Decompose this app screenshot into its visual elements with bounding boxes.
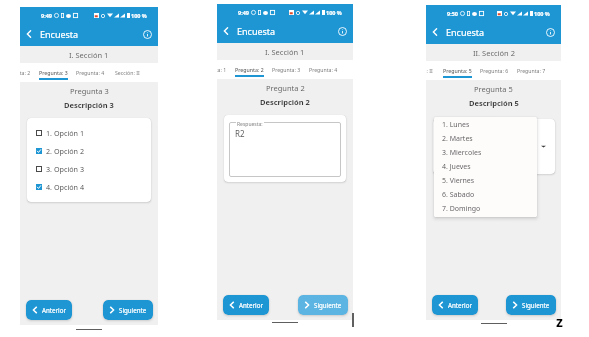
button[interactable]: Siguiente [298,295,348,315]
staticText: Pregunta: 3 [39,69,68,76]
staticText: Anterior [42,306,66,314]
button[interactable]: Pregunta: 2 [20,63,35,82]
button[interactable]: Back [217,22,235,40]
staticText: Pregunta: 2 [235,66,264,73]
button[interactable]: 3. Miercoles [434,146,537,160]
button[interactable]: Pregunta: 3 [268,60,305,79]
button[interactable]: Pregunta: 1 [217,60,231,79]
button[interactable]: Pregunta: 4 [72,63,109,82]
button[interactable]: 6. Sabado [434,188,537,202]
staticText: Sección: II [115,69,140,76]
staticText: 100 % [131,12,147,19]
staticText: 2. Martes [442,134,473,144]
staticText: Pregunta: 4 [309,66,338,73]
staticText: Anterior [239,301,263,309]
staticText: Siguiente [522,301,550,309]
staticText: Pregunta: 5 [443,67,472,74]
staticText: 2. Opción 2 [46,146,85,156]
staticText: Respuesta: [237,121,263,128]
button[interactable]: Anterior [223,295,269,315]
staticText: 9:49 [41,12,52,19]
button[interactable]: Back [20,25,38,43]
button[interactable]: Sección: II [109,63,146,82]
button[interactable]: Pregunta: 4 [305,60,342,79]
staticText: Siguiente [314,301,342,309]
staticText: 9:49 [238,9,249,16]
button[interactable]: Siguiente [103,300,153,320]
staticText: 9:50 [447,10,458,17]
staticText: Descripción 3 [64,100,114,110]
button[interactable]: 2. Opción 2 [27,142,151,160]
staticText: 4. Jueves [442,162,471,172]
staticText: Descripción 2 [260,97,310,107]
button[interactable]: 2. Martes [434,132,537,146]
staticText: 100 % [326,9,342,16]
staticText: Pregunta: 4 [76,69,105,76]
staticText: Pregunta: 3 [272,66,301,73]
staticText: Encuesta [237,25,276,37]
staticText: Encuesta [40,28,79,40]
button[interactable]: Pregunta: 5 [439,61,476,80]
button[interactable]: Siguiente [506,295,556,315]
staticText: Pregunta 3 [70,86,109,96]
staticText: Pregunta: 1 [217,66,227,73]
staticText: Pregunta 5 [474,84,513,94]
staticText: 6. Sabado [442,190,475,200]
staticText: II. Sección 2 [473,48,515,58]
staticText: Anterior [448,301,472,309]
button[interactable]: 7. Domingo [434,202,537,216]
button[interactable]: Anterior [26,300,72,320]
staticText: 3. Opción 3 [46,164,85,174]
staticText: I. Sección 1 [265,47,305,57]
staticText: Pregunta: 2 [20,69,31,76]
button[interactable]: 1. Lunes [434,118,537,132]
button[interactable]: Information [138,25,156,43]
button[interactable]: Pregunta: 7 [513,61,550,80]
staticText: Descripción 5 [469,98,519,108]
staticText: 3. Miercoles [442,148,482,158]
button[interactable]: Pregunta: 3 [35,63,72,82]
button[interactable]: 4. Opción 4 [27,178,151,196]
button[interactable]: Pregunta: 2 [231,60,268,79]
staticText: 4. Opción 4 [46,182,85,192]
staticText: 100 % [534,10,550,17]
staticText: Pregunta: 6 [480,67,509,74]
button[interactable]: 5. Viernes [434,174,537,188]
staticText: R2 [235,128,245,139]
button[interactable]: 4. Jueves [434,160,537,174]
button[interactable]: Back [426,23,444,41]
staticText: 7. Domingo [442,204,481,214]
staticText: Pregunta: 7 [517,67,546,74]
staticText: Siguiente [119,306,147,314]
staticText: I. Sección 1 [69,50,109,60]
button[interactable]: Information [541,23,559,41]
button[interactable]: Pregunta: 6 [476,61,513,80]
button[interactable]: 3. Opción 3 [27,160,151,178]
button[interactable]: Anterior [432,295,478,315]
staticText: 1. Opción 1 [46,128,85,138]
staticText: Pregunta 2 [266,83,305,93]
button[interactable]: 1. Opción 1 [27,124,151,142]
staticText: Encuesta [446,26,485,38]
staticText: z [556,312,563,331]
staticText: Sección: II [426,67,433,74]
button[interactable]: Sección: II [426,61,439,80]
staticText: 1. Lunes [442,120,470,130]
button[interactable]: Information [333,22,351,40]
staticText: 5. Viernes [442,176,475,186]
